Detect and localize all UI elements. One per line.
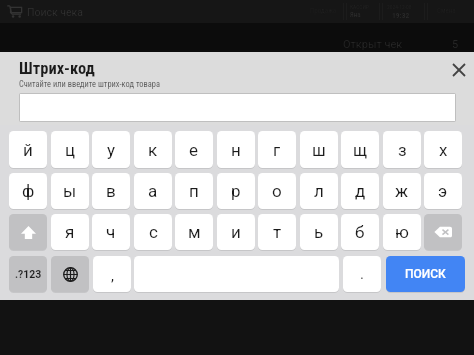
staticText: ь	[314, 222, 324, 242]
staticText: и	[231, 222, 241, 242]
staticText: 5	[452, 38, 459, 51]
button[interactable]: х	[424, 131, 462, 168]
button[interactable]: г	[258, 131, 296, 168]
staticText: Яна	[350, 11, 361, 19]
button[interactable]: ш	[300, 131, 338, 168]
button[interactable]: б	[341, 214, 379, 250]
button[interactable]: ь	[300, 214, 338, 250]
staticText: Штрих-код	[19, 59, 95, 78]
button[interactable]: Change language	[51, 256, 89, 292]
button[interactable]: н	[217, 131, 255, 168]
staticText: б	[355, 222, 365, 242]
staticText: к	[148, 140, 158, 160]
button[interactable]: ю	[383, 214, 421, 250]
staticText: ,	[111, 267, 114, 285]
button[interactable]: м	[175, 214, 213, 250]
staticText: х	[439, 140, 448, 160]
staticText: ж	[395, 181, 409, 201]
staticText: ч	[106, 222, 116, 242]
button[interactable]: з	[383, 131, 421, 168]
button[interactable]: к	[134, 131, 172, 168]
button[interactable]: а	[134, 173, 172, 209]
button[interactable]: т	[258, 214, 296, 250]
staticText: е	[189, 140, 199, 160]
staticText: ю	[395, 222, 409, 242]
staticText: у	[107, 140, 116, 160]
staticText: э	[438, 181, 448, 201]
button[interactable]: .?123	[9, 256, 47, 292]
button[interactable]: п	[175, 173, 213, 209]
button[interactable]: л	[300, 173, 338, 209]
button[interactable]: и	[217, 214, 255, 250]
staticText: я	[65, 222, 75, 242]
staticText: й	[23, 140, 33, 160]
staticText: р	[231, 181, 241, 201]
staticText: Считайте или введите штрих-код товара	[19, 79, 160, 89]
button[interactable]: е	[175, 131, 213, 168]
button[interactable]: ж	[383, 173, 421, 209]
staticText: т	[273, 222, 282, 242]
staticText: ц	[65, 140, 76, 160]
button[interactable]: ф	[9, 173, 47, 209]
staticText: м	[188, 222, 201, 242]
staticText: л	[314, 181, 324, 201]
button[interactable]: о	[258, 173, 296, 209]
button[interactable]: Backspace	[424, 214, 462, 250]
button[interactable]: .	[343, 256, 381, 292]
button[interactable]: с	[134, 214, 172, 250]
staticText: .?123	[15, 268, 42, 280]
button[interactable]: ы	[51, 173, 89, 209]
staticText: а	[148, 181, 158, 201]
button[interactable]: Cart	[6, 3, 23, 20]
button[interactable]: ч	[92, 214, 130, 250]
staticText: в	[106, 181, 116, 201]
staticText: Открыт чек	[343, 38, 403, 51]
staticText: щ	[353, 140, 368, 160]
staticText: с	[149, 222, 158, 242]
button[interactable]: щ	[341, 131, 379, 168]
button[interactable]: д	[341, 173, 379, 209]
button[interactable]: я	[51, 214, 89, 250]
staticText: з	[398, 140, 407, 160]
staticText: 19:32	[392, 11, 410, 20]
staticText: ПОИСК	[405, 267, 446, 281]
button[interactable]: Shift	[9, 214, 47, 250]
button[interactable]: в	[92, 173, 130, 209]
button[interactable]: э	[424, 173, 462, 209]
staticText: ы	[63, 181, 77, 201]
button[interactable]: ,	[93, 256, 131, 292]
staticText: н	[231, 140, 241, 160]
staticText: п	[189, 181, 199, 201]
staticText: ф	[22, 181, 35, 201]
button[interactable]: у	[92, 131, 130, 168]
staticText: ш	[312, 140, 326, 160]
staticText: г	[273, 140, 281, 160]
button[interactable]: й	[9, 131, 47, 168]
button[interactable]: р	[217, 173, 255, 209]
button[interactable]: ПОИСК	[386, 256, 465, 292]
staticText: о	[272, 181, 282, 201]
staticText: д	[355, 181, 366, 201]
staticText: Поиск чека	[27, 6, 83, 18]
button[interactable]: Close	[443, 54, 474, 85]
staticText: .	[360, 265, 364, 283]
button[interactable]: ц	[51, 131, 89, 168]
